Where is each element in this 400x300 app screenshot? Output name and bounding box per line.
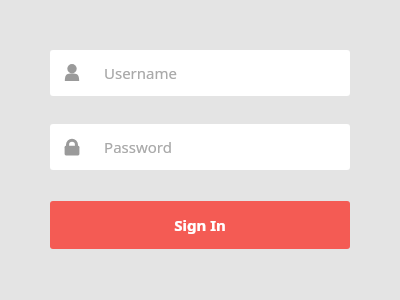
other: Username <box>62 63 82 83</box>
button[interactable]: Username <box>50 50 350 96</box>
button[interactable]: Sign In <box>50 201 350 249</box>
other: Password <box>62 137 82 157</box>
staticText: Sign In <box>174 215 226 235</box>
staticText: Username <box>104 63 177 83</box>
button[interactable]: Password <box>50 124 350 170</box>
staticText: Password <box>104 137 172 157</box>
